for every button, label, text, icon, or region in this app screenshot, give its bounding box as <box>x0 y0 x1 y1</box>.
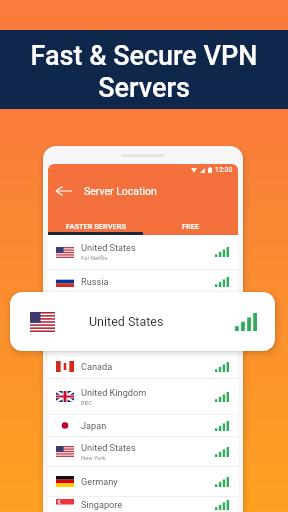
staticText: United Kingdom <box>81 387 147 398</box>
button[interactable]: Russia <box>48 270 238 294</box>
staticText: For Netflix <box>81 255 108 262</box>
button[interactable]: United States <box>48 235 238 270</box>
button[interactable]: Canada <box>48 355 238 379</box>
staticText: 12:30 <box>215 166 233 174</box>
staticText: Japan <box>81 420 107 431</box>
button[interactable]: United Kingdom <box>48 379 238 415</box>
button[interactable]: Germany <box>48 467 238 497</box>
staticText: FASTER SERVERS <box>66 222 126 231</box>
staticText: Singapore <box>81 499 123 510</box>
staticText: Server Location <box>84 185 157 197</box>
button[interactable]: Back <box>55 182 72 199</box>
staticText: New York <box>81 455 106 462</box>
staticText: Canada <box>81 361 113 372</box>
staticText: United States <box>81 242 136 253</box>
staticText: United States <box>81 442 136 453</box>
button[interactable]: Singapore <box>48 497 238 512</box>
staticText: FREE <box>182 222 200 231</box>
button[interactable]: United States <box>48 437 238 467</box>
staticText: Russia <box>81 276 109 287</box>
button[interactable]: Japan <box>48 415 238 437</box>
staticText: BBC <box>81 400 92 407</box>
button[interactable]: FASTER SERVERS <box>48 205 143 235</box>
button[interactable]: United States <box>10 292 275 351</box>
button[interactable]: FREE <box>143 205 238 235</box>
staticText: Fast & Secure VPN Servers <box>0 40 288 103</box>
staticText: United States <box>89 314 164 329</box>
staticText: Germany <box>81 476 118 487</box>
